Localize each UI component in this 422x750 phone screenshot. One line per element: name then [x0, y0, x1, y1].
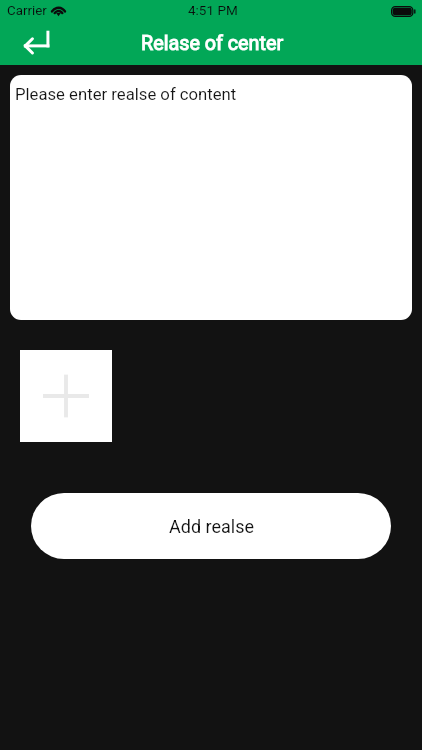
staticText: 4:51 PM	[188, 2, 238, 18]
button[interactable]: Add image	[20, 350, 112, 442]
button[interactable]: Please enter realse of content	[10, 75, 412, 320]
button[interactable]: Add realse	[31, 493, 391, 559]
staticText: Carrier	[7, 3, 47, 19]
staticText: Add realse	[169, 516, 254, 537]
staticText: Please enter realse of content	[15, 85, 237, 105]
button[interactable]: Back	[18, 24, 56, 62]
staticText: Relase of center	[141, 32, 284, 55]
